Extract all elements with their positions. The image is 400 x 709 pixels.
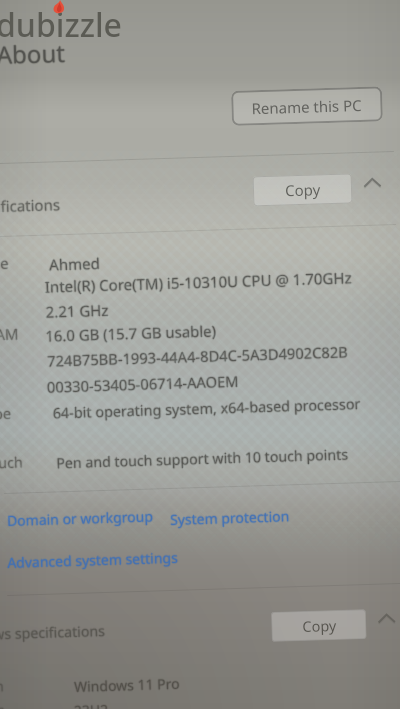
staticText: Pen and touch bbox=[0, 452, 25, 475]
staticText: 00330-53405-06714-AAOEM bbox=[47, 371, 239, 397]
staticText: Device name bbox=[0, 254, 9, 277]
staticText: 2.21 GHz bbox=[46, 300, 110, 322]
staticText: 724B75BB-1993-44A4-8D4C-5A3D4902C82B bbox=[47, 341, 348, 371]
staticText: 16.0 GB (15.7 GB usable) bbox=[44, 320, 215, 346]
staticText: Intel(R) Core(TM) i5-10310U CPU @ 1.70GH… bbox=[44, 266, 352, 296]
staticText: Pen and touch support with 10 touch poin… bbox=[56, 443, 348, 471]
staticText: 16.0 GB (15.7 GB usable) bbox=[45, 319, 216, 345]
staticText: Intel(R) Core(TM) i5-10310U CPU @ 1.70GH… bbox=[46, 267, 353, 297]
staticText: Windows 11 Pro bbox=[74, 673, 180, 695]
staticText: 23H2 bbox=[73, 699, 109, 709]
staticText: Device specifications bbox=[0, 194, 62, 219]
staticText: Device name bbox=[0, 252, 9, 275]
staticText: System type bbox=[0, 403, 11, 425]
staticText: 16.0 GB (15.7 GB usable) bbox=[46, 320, 217, 346]
staticText: 724B75BB-1993-44A4-8D4C-5A3D4902C82B bbox=[47, 342, 348, 372]
staticText: Ahmed bbox=[49, 254, 100, 275]
staticText: System protection bbox=[170, 507, 290, 530]
staticText: System type bbox=[0, 403, 12, 425]
staticText: Ahmed bbox=[50, 253, 101, 274]
staticText: Installed RAM bbox=[0, 323, 19, 346]
button[interactable]: Collapse Windows specifications bbox=[378, 612, 395, 625]
staticText: 00330-53405-06714-AAOEM bbox=[47, 370, 239, 396]
staticText: Intel(R) Core(TM) i5-10310U CPU @ 1.70GH… bbox=[44, 267, 351, 297]
staticText: 724B75BB-1993-44A4-8D4C-5A3D4902C82B bbox=[47, 340, 348, 370]
staticText: Ahmed bbox=[49, 252, 100, 273]
staticText: Installed RAM bbox=[0, 323, 20, 346]
button[interactable]: Rename this PC bbox=[231, 86, 383, 126]
staticText: Installed RAM bbox=[0, 324, 20, 347]
staticText: 2.21 GHz bbox=[45, 299, 109, 321]
button[interactable]: Collapse device specifications bbox=[364, 176, 381, 189]
staticText: Windows specifications bbox=[0, 621, 107, 645]
staticText: Advanced system settings bbox=[8, 548, 179, 572]
staticText: About bbox=[0, 36, 66, 71]
staticText: Windows specifications bbox=[0, 621, 106, 645]
staticText: 23H2 bbox=[72, 700, 108, 709]
staticText: System protection bbox=[169, 506, 289, 529]
staticText: Domain or workgroup bbox=[8, 506, 155, 530]
staticText: 64-bit operating system, x64-based proce… bbox=[52, 394, 361, 423]
staticText: About bbox=[0, 37, 66, 72]
staticText: Advanced system settings bbox=[6, 548, 177, 572]
staticText: Edition bbox=[0, 677, 4, 697]
staticText: Edition bbox=[0, 675, 4, 695]
staticText: 23H2 bbox=[73, 700, 109, 709]
staticText: Device specifications bbox=[0, 194, 60, 219]
staticText: Domain or workgroup bbox=[7, 506, 154, 530]
staticText: 00330-53405-06714-AAOEM bbox=[46, 371, 238, 397]
staticText: Installed RAM bbox=[0, 322, 20, 345]
staticText: Pen and touch bbox=[0, 453, 24, 476]
staticText: Domain or workgroup bbox=[7, 505, 154, 529]
staticText: Device name bbox=[0, 253, 9, 276]
button[interactable]: Copy bbox=[271, 609, 367, 642]
staticText: System protection bbox=[171, 506, 291, 529]
staticText: System protection bbox=[170, 506, 290, 529]
staticText: Intel(R) Core(TM) i5-10310U CPU @ 1.70GH… bbox=[45, 267, 352, 297]
staticText: Windows specifications bbox=[0, 621, 105, 645]
staticText: Version bbox=[0, 700, 6, 709]
staticText: Windows 11 Pro bbox=[74, 675, 180, 697]
button[interactable] bbox=[6, 505, 154, 531]
staticText: Copy bbox=[302, 615, 337, 636]
staticText: Pen and touch support with 10 touch poin… bbox=[57, 444, 349, 472]
staticText: Pen and touch support with 10 touch poin… bbox=[56, 444, 348, 472]
staticText: About bbox=[0, 36, 65, 71]
staticText: Edition bbox=[0, 676, 4, 696]
staticText: Edition bbox=[0, 676, 5, 696]
staticText: Device specifications bbox=[0, 195, 61, 220]
staticText: System type bbox=[0, 402, 12, 424]
staticText: 2.21 GHz bbox=[44, 300, 108, 322]
staticText: Pen and touch support with 10 touch poin… bbox=[56, 445, 348, 473]
button[interactable] bbox=[6, 547, 179, 573]
staticText: Copy bbox=[285, 179, 321, 200]
staticText: System type bbox=[0, 403, 13, 425]
staticText: Version bbox=[0, 700, 7, 709]
staticText: Windows 11 Pro bbox=[75, 674, 181, 696]
staticText: Version bbox=[0, 700, 5, 709]
staticText: Domain or workgroup bbox=[7, 507, 154, 531]
staticText: 64-bit operating system, x64-based proce… bbox=[53, 394, 362, 423]
staticText: System type bbox=[0, 404, 12, 426]
staticText: 64-bit operating system, x64-based proce… bbox=[51, 394, 360, 424]
staticText: Version bbox=[0, 701, 6, 709]
staticText: Pen and touch bbox=[0, 452, 23, 475]
staticText: 2.21 GHz bbox=[45, 300, 109, 322]
staticText: 00330-53405-06714-AAOEM bbox=[47, 372, 239, 398]
staticText: System protection bbox=[170, 505, 290, 528]
staticText: 724B75BB-1993-44A4-8D4C-5A3D4902C82B bbox=[46, 341, 347, 371]
staticText: 16.0 GB (15.7 GB usable) bbox=[45, 321, 217, 347]
staticText: Edition bbox=[0, 676, 3, 697]
button[interactable]: Copy bbox=[253, 173, 352, 206]
button[interactable] bbox=[169, 505, 293, 530]
staticText: Advanced system settings bbox=[7, 547, 178, 571]
staticText: Pen and touch bbox=[0, 451, 23, 474]
staticText: Device name bbox=[0, 253, 8, 276]
staticText: Domain or workgroup bbox=[6, 506, 153, 530]
staticText: Intel(R) Core(TM) i5-10310U CPU @ 1.70GH… bbox=[45, 268, 352, 298]
staticText: Rename this PC bbox=[251, 95, 363, 118]
